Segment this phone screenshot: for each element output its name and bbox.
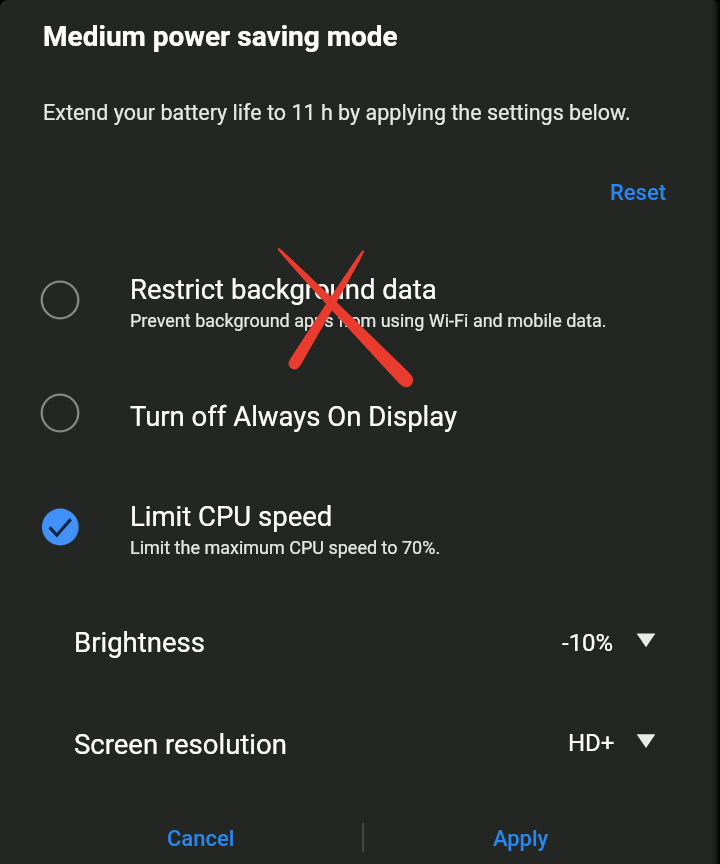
staticText: Screen resolution [74,728,287,760]
staticText: HD+ [568,729,615,757]
staticText: Cancel [167,826,235,852]
button[interactable]: Screen resolution [0,702,720,803]
staticText: Reset [610,180,667,206]
button[interactable]: Restrict background data [0,240,720,367]
button[interactable]: Cancel [0,806,362,864]
staticText: Prevent background apps from using Wi-Fi… [130,310,607,331]
staticText: Extend your battery life to 11 h by appl… [43,100,631,125]
staticText: -10% [562,629,614,657]
button[interactable]: Limit CPU speed [0,467,720,594]
staticText: Limit the maximum CPU speed to 70%. [130,537,441,558]
button[interactable]: Turn off Always On Display [0,367,720,467]
staticText: Limit CPU speed [130,500,333,532]
staticText: Medium power saving mode [43,20,398,53]
button[interactable]: Reset [591,170,689,216]
staticText: Apply [493,826,549,852]
staticText: Restrict background data [130,273,437,305]
button[interactable]: Brightness [0,601,720,702]
staticText: Turn off Always On Display [130,400,458,432]
button[interactable]: Apply [364,806,720,864]
staticText: Brightness [74,626,205,658]
